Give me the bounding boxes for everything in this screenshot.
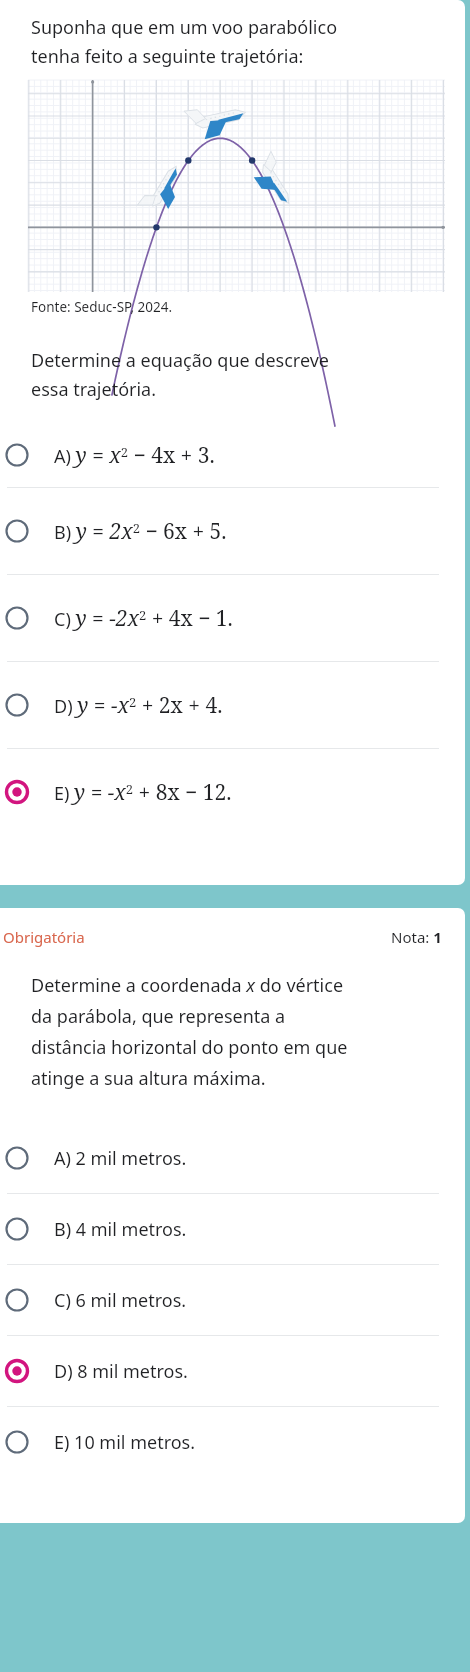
button[interactable]: D) 8 mil metros. bbox=[0, 1336, 465, 1406]
staticText: A) y = x2 − 4x + 3. bbox=[54, 441, 215, 470]
staticText: E) 10 mil metros. bbox=[54, 1430, 196, 1455]
staticText: Suponha que em um voo parabólico tenha f… bbox=[31, 15, 338, 68]
staticText: D) y = −x2 + 2x + 4. bbox=[54, 691, 223, 720]
staticText: E) y = −x2 + 8x − 12. bbox=[54, 778, 232, 807]
button[interactable]: A) 2 mil metros. bbox=[0, 1123, 465, 1193]
staticText: D) 8 mil metros. bbox=[54, 1359, 188, 1384]
staticText: Determine a equação que descreve essa tr… bbox=[31, 348, 330, 401]
button[interactable]: C) y = −2x2 + 4x − 1. bbox=[0, 575, 465, 661]
button[interactable]: B) 4 mil metros. bbox=[0, 1194, 465, 1264]
staticText: Nota: 1 bbox=[391, 927, 442, 947]
staticText: Obrigatória bbox=[3, 927, 85, 947]
staticText: B) 4 mil metros. bbox=[54, 1217, 187, 1242]
button[interactable]: D) y = −x2 + 2x + 4. bbox=[0, 662, 465, 748]
button[interactable]: A) y = x2 − 4x + 3. bbox=[0, 423, 465, 487]
staticText: Determine a coordenada x do vértice da p… bbox=[31, 973, 348, 1091]
button[interactable]: B) y = 2x2 − 6x + 5. bbox=[0, 488, 465, 574]
button[interactable]: E) y = −x2 + 8x − 12. bbox=[0, 749, 465, 835]
staticText: C) 6 mil metros. bbox=[54, 1288, 187, 1313]
staticText: C) y = −2x2 + 4x − 1. bbox=[54, 604, 233, 633]
button[interactable]: C) 6 mil metros. bbox=[0, 1265, 465, 1335]
staticText: A) 2 mil metros. bbox=[54, 1146, 187, 1171]
staticText: Fonte: Seduc-SP, 2024. bbox=[31, 298, 173, 316]
button[interactable]: E) 10 mil metros. bbox=[0, 1407, 465, 1477]
staticText: B) y = 2x2 − 6x + 5. bbox=[54, 517, 227, 546]
